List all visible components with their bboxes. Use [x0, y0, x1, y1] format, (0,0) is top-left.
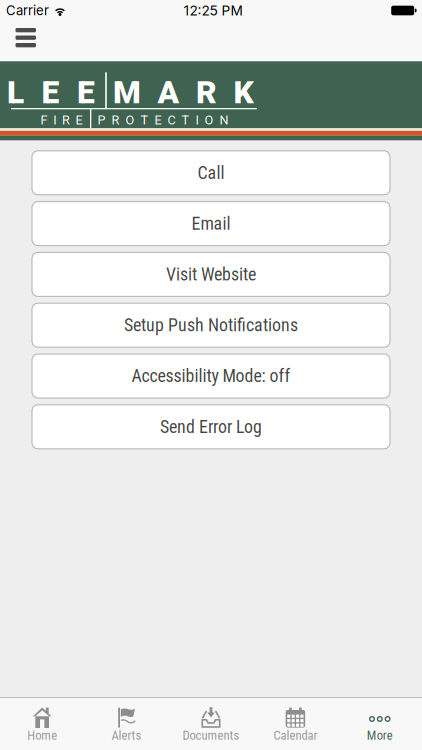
staticText: Setup Push Notifications	[124, 315, 298, 336]
staticText: I	[195, 113, 198, 128]
staticText: More	[367, 728, 393, 743]
staticText: P	[97, 113, 105, 128]
staticText: M	[113, 74, 141, 111]
staticText: R	[62, 113, 70, 128]
staticText: C	[167, 113, 175, 128]
button[interactable]: Alerts	[84, 698, 169, 750]
button[interactable]: More	[338, 698, 422, 750]
staticText: E	[76, 113, 83, 128]
staticText: T	[181, 113, 189, 128]
staticText: Send Error Log	[160, 416, 262, 437]
staticText: 12:25 PM	[183, 2, 242, 19]
staticText: R	[196, 74, 217, 111]
staticText: Carrier	[6, 3, 49, 18]
staticText: Calendar	[273, 728, 317, 743]
staticText: L	[7, 74, 24, 111]
button[interactable]: Calendar	[253, 698, 338, 750]
staticText: E	[77, 74, 95, 111]
staticText: O	[204, 113, 213, 128]
staticText: F	[40, 113, 47, 128]
staticText: A	[157, 74, 179, 111]
staticText: Alerts	[112, 728, 142, 743]
staticText: N	[219, 113, 228, 128]
button[interactable]: Menu	[0, 25, 46, 61]
staticText: Call	[197, 162, 224, 183]
button[interactable]: Visit Website	[32, 252, 390, 296]
button[interactable]: Accessibility Mode: off	[32, 354, 390, 398]
button[interactable]: Call	[32, 151, 390, 195]
staticText: Email	[191, 213, 230, 234]
staticText: Visit Website	[166, 264, 256, 285]
staticText: Home	[27, 728, 57, 743]
staticText: E	[41, 74, 59, 111]
button[interactable]: Setup Push Notifications	[32, 303, 390, 347]
staticText: T	[140, 113, 148, 128]
staticText: K	[233, 74, 253, 111]
staticText: O	[125, 113, 134, 128]
button[interactable]: Send Error Log	[32, 405, 390, 449]
button[interactable]: Email	[32, 202, 390, 246]
button[interactable]: Home	[0, 698, 84, 750]
staticText: I	[53, 113, 56, 128]
button[interactable]: Documents	[169, 698, 253, 750]
staticText: R	[111, 113, 119, 128]
staticText: Documents	[182, 728, 239, 743]
staticText: Accessibility Mode: off	[131, 365, 290, 386]
staticText: E	[154, 113, 161, 128]
